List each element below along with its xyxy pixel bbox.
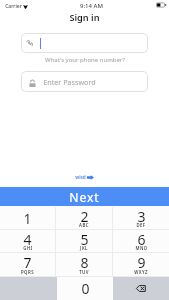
button[interactable]: 8 (56, 253, 112, 276)
staticText: 4 (23, 230, 32, 249)
staticText: 0 (81, 279, 90, 298)
staticText: WXYZ (134, 269, 148, 275)
button[interactable]: 3 (113, 207, 169, 229)
staticText: DEF (136, 222, 146, 228)
staticText: 9 (137, 253, 146, 272)
staticText: JKL (80, 245, 88, 251)
staticText: 9:14 AM (80, 2, 103, 10)
button[interactable]: Delete (113, 277, 169, 300)
staticText: GHI (23, 245, 33, 251)
button[interactable]: 5 (56, 230, 112, 252)
staticText: What's your phone number? (45, 56, 125, 64)
button[interactable]: 4 (0, 230, 55, 252)
button[interactable]: 6 (113, 230, 169, 252)
button[interactable]: 0 (57, 277, 113, 300)
staticText: Sign in (69, 11, 100, 23)
staticText: wisd (75, 174, 86, 180)
button[interactable]: 1 (0, 207, 55, 229)
staticText: 5 (80, 230, 89, 249)
button[interactable]: 2 (56, 207, 112, 229)
button[interactable]: Phone number (21, 33, 148, 53)
staticText: Enter Password (43, 77, 96, 87)
staticText: MNO (135, 245, 148, 251)
staticText: Carrier (5, 3, 22, 10)
button[interactable]: 9 (113, 253, 169, 276)
staticText: PQRS (21, 269, 34, 275)
staticText: 7 (23, 253, 32, 272)
staticText: 1 (23, 209, 32, 228)
button[interactable]: Password (21, 71, 148, 92)
staticText: 3 (137, 207, 146, 226)
button[interactable]: Next (0, 187, 169, 206)
button[interactable]: 7 (0, 253, 55, 276)
staticText: 2 (80, 207, 89, 226)
staticText: 6 (137, 230, 146, 249)
staticText: Next (69, 189, 100, 206)
staticText: 8 (80, 253, 89, 272)
staticText: TUV (79, 269, 89, 275)
staticText: ABC (79, 222, 89, 228)
